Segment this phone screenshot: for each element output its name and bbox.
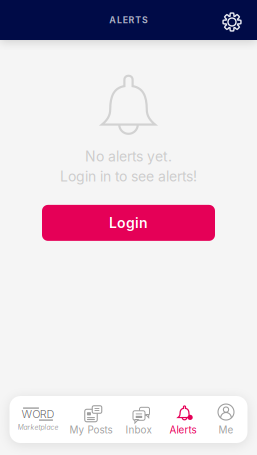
staticText: Marketplace — [17, 423, 58, 431]
staticText: Alerts — [169, 424, 196, 436]
button[interactable]: Settings — [215, 7, 257, 33]
button[interactable]: Alerts — [161, 396, 204, 443]
staticText: My Posts — [69, 424, 112, 436]
staticText: ALERTS — [109, 15, 148, 25]
staticText: WORD — [21, 407, 54, 421]
staticText: Login in to see alerts! — [60, 168, 197, 185]
button[interactable]: My Posts — [66, 396, 115, 443]
staticText: Inbox — [125, 424, 151, 436]
staticText: Login — [109, 214, 148, 231]
button[interactable]: Inbox — [115, 396, 161, 443]
button[interactable]: Me — [204, 396, 247, 443]
staticText: No alerts yet. — [85, 148, 172, 165]
staticText: Me — [218, 424, 233, 436]
button[interactable]: Word Marketplace Home — [9, 396, 66, 443]
button[interactable]: Login — [42, 205, 215, 241]
